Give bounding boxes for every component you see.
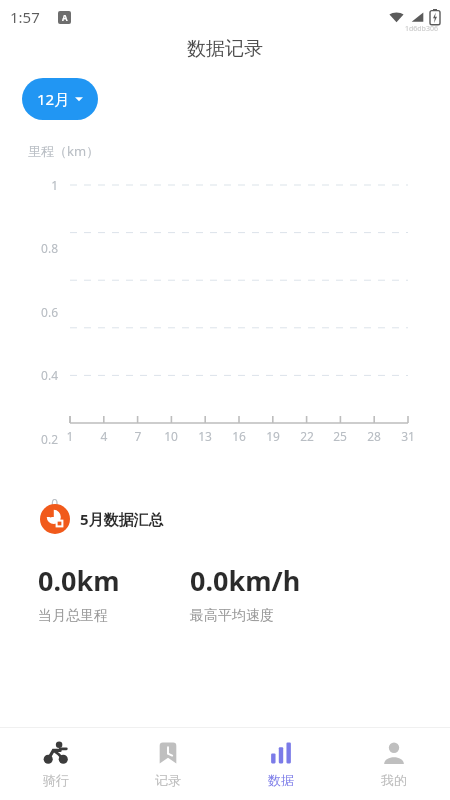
staticText: 0.2 (0, 431, 58, 447)
staticText: 1:57 (10, 7, 40, 27)
button[interactable]: 数据 (224, 728, 337, 800)
staticText: 当月总里程 (38, 607, 108, 625)
staticText: 7 (126, 428, 150, 444)
staticText: 我的 (381, 772, 407, 788)
staticText: 最高平均速度 (190, 607, 274, 625)
staticText: 1d6db306 (405, 24, 438, 34)
staticText: 数据记录 (187, 37, 263, 61)
staticText: 13 (193, 428, 217, 444)
staticText: 4 (92, 428, 116, 444)
staticText: 骑行 (43, 772, 69, 788)
staticText: 28 (362, 428, 386, 444)
button[interactable]: 记录 (112, 728, 224, 800)
staticText: 数据 (268, 772, 294, 788)
staticText: 16 (227, 428, 251, 444)
staticText: 0.0km/h (190, 562, 301, 599)
staticText: A (62, 12, 68, 23)
staticText: 1 (58, 428, 82, 444)
button[interactable]: 12月 (22, 78, 98, 120)
staticText: 0.4 (0, 367, 58, 383)
staticText: 0.6 (0, 304, 58, 320)
staticText: 22 (295, 428, 319, 444)
staticText: 0 (0, 495, 58, 511)
button[interactable]: 骑行 (0, 728, 112, 800)
staticText: 0.8 (0, 240, 58, 256)
staticText: 31 (396, 428, 420, 444)
staticText: 25 (328, 428, 352, 444)
staticText: 里程（km） (28, 142, 100, 160)
button[interactable]: 我的 (337, 728, 450, 800)
staticText: 19 (261, 428, 285, 444)
staticText: 0.0km (38, 562, 120, 599)
staticText: 记录 (155, 772, 181, 788)
staticText: 5月数据汇总 (80, 509, 164, 529)
staticText: 12月 (37, 89, 70, 109)
staticText: 10 (159, 428, 183, 444)
staticText: 1 (0, 177, 58, 193)
